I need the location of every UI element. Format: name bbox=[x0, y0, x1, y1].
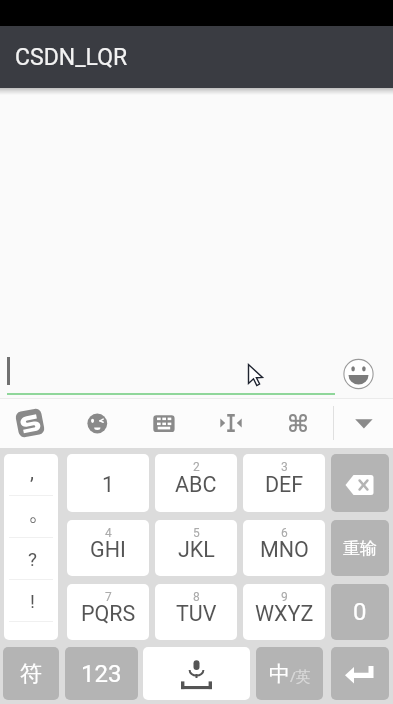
button[interactable]: 0 bbox=[331, 584, 389, 640]
button[interactable]: Sogou menu bbox=[14, 407, 46, 439]
button[interactable]: 符 bbox=[3, 647, 59, 700]
button[interactable]: Shortcut bbox=[284, 409, 312, 437]
staticText: DEF bbox=[265, 472, 304, 497]
staticText: 7 bbox=[105, 590, 112, 604]
button[interactable]: , bbox=[4, 454, 58, 496]
staticText: JKL bbox=[178, 537, 215, 562]
staticText: 3 bbox=[281, 460, 288, 474]
button[interactable]: 2 bbox=[155, 454, 237, 512]
button[interactable]: 中 bbox=[256, 647, 323, 700]
staticText: 重输 bbox=[343, 538, 377, 559]
button[interactable]: ? bbox=[4, 538, 58, 580]
staticText: TUV bbox=[176, 601, 217, 626]
staticText: MNO bbox=[260, 537, 309, 562]
staticText: 1 bbox=[102, 472, 115, 497]
staticText: 123 bbox=[81, 660, 122, 688]
staticText: /英 bbox=[290, 666, 311, 686]
staticText: 5 bbox=[193, 526, 200, 540]
button[interactable]: ! bbox=[4, 580, 58, 622]
button[interactable]: Switch keyboard bbox=[148, 409, 178, 439]
button[interactable]: 4 bbox=[67, 520, 149, 576]
staticText: 8 bbox=[193, 590, 200, 604]
staticText: CSDN_LQR bbox=[15, 44, 128, 71]
staticText: 0 bbox=[353, 598, 367, 626]
button[interactable]: 8 bbox=[155, 584, 237, 640]
staticText: ABC bbox=[175, 472, 217, 497]
button[interactable]: Delete bbox=[331, 454, 389, 512]
button[interactable]: Move cursor bbox=[217, 409, 245, 437]
staticText: 6 bbox=[281, 526, 288, 540]
button[interactable]: 。 bbox=[4, 496, 58, 538]
button[interactable]: 7 bbox=[67, 584, 149, 640]
staticText: , bbox=[30, 460, 34, 483]
button[interactable]: Space and voice input bbox=[143, 647, 250, 700]
button[interactable]: 1 bbox=[67, 454, 149, 512]
staticText: 2 bbox=[193, 460, 200, 474]
staticText: ! bbox=[30, 590, 35, 612]
staticText: 符 bbox=[20, 660, 42, 688]
button[interactable] bbox=[4, 622, 58, 640]
staticText: 中 bbox=[269, 661, 290, 687]
staticText: ? bbox=[28, 548, 37, 570]
staticText: 。 bbox=[28, 497, 52, 527]
staticText: GHI bbox=[90, 537, 126, 562]
button[interactable]: Emoji bbox=[341, 356, 377, 392]
staticText: PQRS bbox=[81, 601, 136, 626]
button[interactable]: Emoticons bbox=[83, 409, 111, 437]
button[interactable]: Enter bbox=[331, 647, 389, 700]
button[interactable]: 6 bbox=[243, 520, 325, 576]
staticText: WXYZ bbox=[255, 601, 314, 626]
button[interactable]: Hide keyboard bbox=[349, 409, 379, 439]
button[interactable]: 123 bbox=[65, 647, 138, 700]
staticText: 9 bbox=[281, 590, 288, 604]
staticText: 4 bbox=[105, 526, 112, 540]
button[interactable]: 重输 bbox=[331, 520, 389, 576]
button[interactable]: 9 bbox=[243, 584, 325, 640]
button[interactable]: 3 bbox=[243, 454, 325, 512]
button[interactable]: 5 bbox=[155, 520, 237, 576]
